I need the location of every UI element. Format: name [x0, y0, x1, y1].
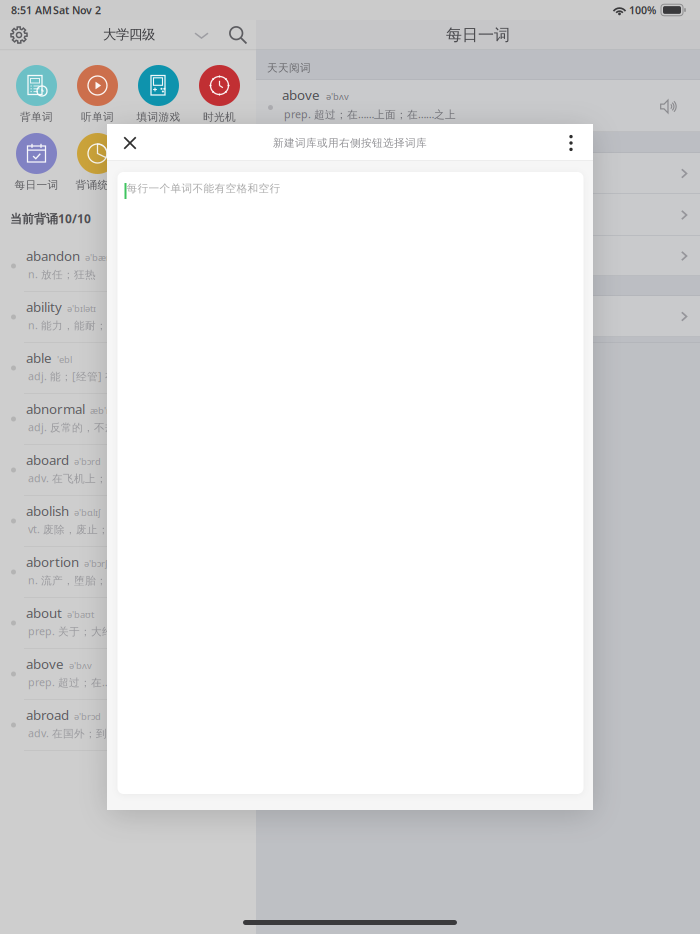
staticText: prep. 超过；在……上面；在……之上: [284, 107, 456, 121]
staticText: abroad: [26, 706, 69, 724]
button[interactable]: above: [256, 80, 700, 132]
staticText: æb'nɔːml: [90, 404, 130, 417]
button[interactable]: [256, 236, 700, 276]
staticText: 大学四级: [103, 26, 155, 43]
staticText: ə'bɑlɪʃ: [74, 506, 100, 519]
staticText: ə'bʌv: [69, 659, 92, 672]
button[interactable]: abolish: [0, 495, 256, 546]
staticText: 天天阅词: [267, 61, 311, 74]
staticText: 每行一个单词不能有空格和空行: [126, 182, 280, 195]
button[interactable]: above: [0, 648, 256, 699]
staticText: able: [26, 349, 52, 367]
button[interactable]: 填词游戏: [128, 65, 189, 127]
staticText: 每日一词: [446, 25, 510, 45]
staticText: n. 流产，堕胎；小产: [28, 573, 129, 587]
button[interactable]: able: [0, 342, 256, 393]
staticText: adj. 反常的，不规则的: [28, 420, 138, 434]
staticText: ə'bændən: [85, 251, 129, 264]
staticText: prep. 关于；大约: [28, 624, 113, 638]
button[interactable]: 大学四级: [96, 22, 216, 48]
staticText: ə'bɪlətɪ: [67, 302, 96, 315]
button[interactable]: abortion: [0, 546, 256, 597]
staticText: ability: [26, 298, 62, 316]
staticText: prep. 超过；在……: [28, 675, 118, 689]
staticText: above: [26, 655, 64, 673]
staticText: ə'brɔd: [74, 710, 101, 723]
button[interactable]: 听单词: [67, 65, 128, 127]
button[interactable]: [256, 296, 700, 337]
staticText: 新建词库或用右侧按钮选择词库: [273, 136, 427, 149]
staticText: 100%: [629, 3, 656, 17]
button[interactable]: 背单词: [6, 65, 67, 127]
staticText: ə'bɔrʃən: [84, 557, 118, 570]
staticText: 8:51 AM: [11, 3, 52, 17]
staticText: 当前背诵10/10: [10, 210, 91, 226]
staticText: adv. 在飞机上；[船]: [28, 471, 126, 485]
staticText: 背诵统计: [75, 178, 119, 191]
staticText: ə'baʊt: [67, 608, 94, 621]
staticText: n. 放任；狂热: [28, 267, 96, 281]
button[interactable]: abandon: [0, 240, 256, 291]
staticText: about: [26, 604, 62, 622]
staticText: 'ebl: [57, 353, 72, 366]
staticText: ə'bʌv: [326, 90, 349, 103]
button[interactable]: 搜索: [225, 22, 251, 48]
staticText: 背单词: [20, 110, 53, 123]
button[interactable]: 设置: [6, 22, 32, 48]
button[interactable]: 每日一词: [6, 133, 67, 195]
button[interactable]: 更多: [549, 129, 593, 157]
staticText: abnormal: [26, 400, 85, 418]
button[interactable]: aboard: [0, 444, 256, 495]
button[interactable]: 时光机: [189, 65, 250, 127]
staticText: Sat Nov 2: [53, 3, 101, 17]
staticText: above: [282, 86, 320, 104]
staticText: 每日一词: [14, 178, 58, 191]
staticText: 填词游戏: [136, 110, 180, 123]
button[interactable]: ability: [0, 291, 256, 342]
staticText: abandon: [26, 247, 80, 265]
staticText: n. 能力，能耐；才能: [28, 318, 129, 332]
staticText: abortion: [26, 553, 79, 571]
staticText: adj. 能；[经管] 有能力的: [28, 369, 149, 383]
staticText: 听单词: [81, 110, 114, 123]
button[interactable]: abroad: [0, 699, 256, 750]
staticText: ə'bɔrd: [74, 455, 101, 468]
button[interactable]: abnormal: [0, 393, 256, 444]
button[interactable]: 关闭: [113, 129, 147, 157]
button[interactable]: about: [0, 597, 256, 648]
button[interactable]: [256, 194, 700, 236]
staticText: aboard: [26, 451, 69, 469]
button[interactable]: [256, 153, 700, 194]
staticText: vt. 废除，废止；取消: [28, 522, 131, 536]
staticText: adv. 在国外；到海外: [28, 726, 129, 740]
staticText: abolish: [26, 502, 69, 520]
staticText: 时光机: [203, 110, 236, 123]
button[interactable]: 背诵统计: [67, 133, 128, 195]
